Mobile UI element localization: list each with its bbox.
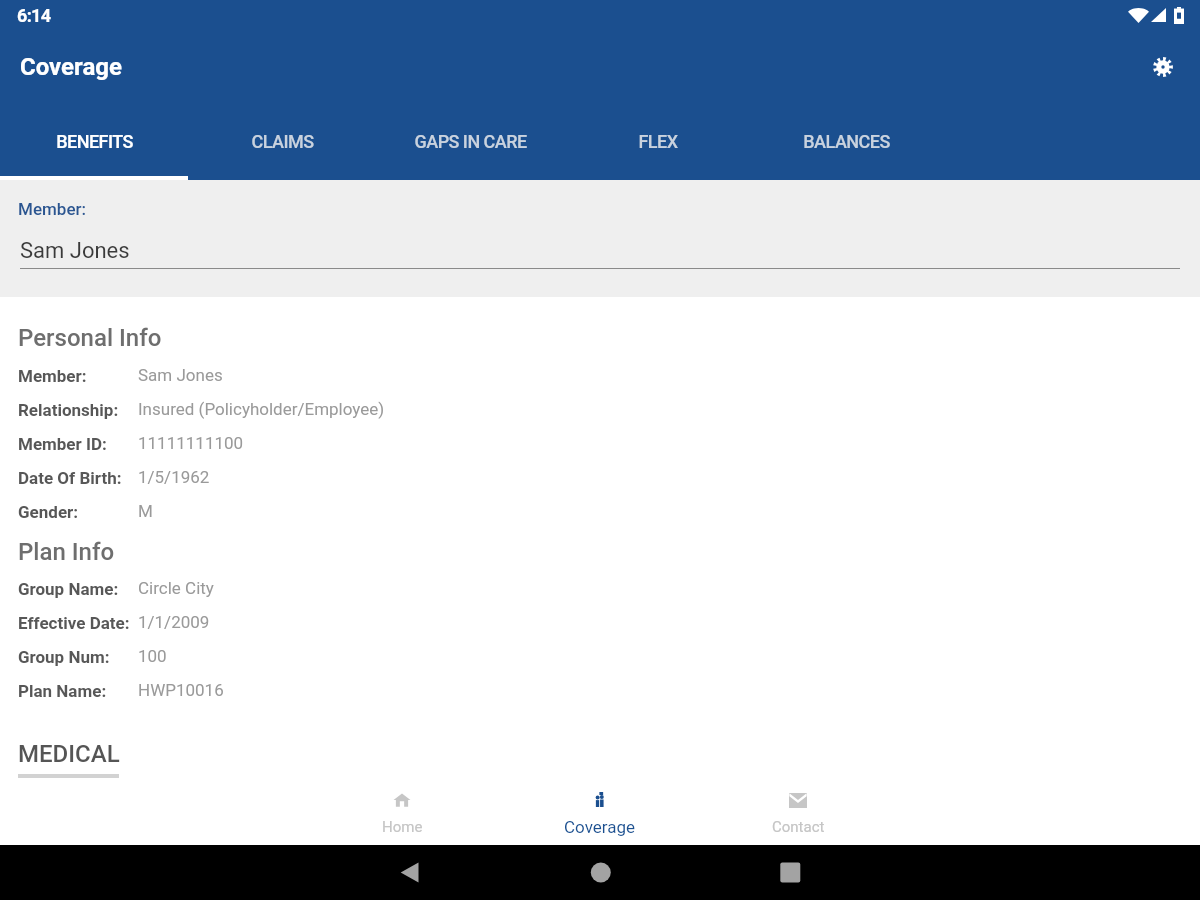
- staticText: Sam Jones: [20, 238, 130, 264]
- staticText: Member ID:: [18, 434, 107, 454]
- button[interactable]: BENEFITS: [0, 112, 188, 180]
- staticText: Gender:: [18, 502, 79, 522]
- staticText: CLAIMS: [251, 131, 314, 152]
- staticText: Circle City: [138, 578, 214, 598]
- button[interactable]: Coverage: [501, 783, 699, 845]
- staticText: Sam Jones: [138, 365, 223, 385]
- staticText: Coverage: [564, 817, 636, 837]
- button[interactable]: Sam Jones: [20, 226, 1180, 269]
- button[interactable]: Home: [570, 845, 630, 900]
- button[interactable]: GAPS IN CARE: [376, 112, 564, 180]
- staticText: Contact: [772, 818, 825, 836]
- staticText: MEDICAL: [18, 740, 120, 768]
- staticText: Group Name:: [18, 579, 119, 599]
- staticText: Relationship:: [18, 400, 119, 420]
- staticText: Member:: [18, 366, 87, 386]
- staticText: 1/1/2009: [138, 612, 210, 632]
- button[interactable]: FLEX: [564, 112, 752, 180]
- button[interactable]: Back: [380, 845, 440, 900]
- staticText: GAPS IN CARE: [414, 131, 527, 152]
- staticText: M: [138, 501, 153, 521]
- staticText: Member:: [18, 199, 86, 219]
- button[interactable]: BALANCES: [752, 112, 940, 180]
- staticText: Plan Info: [18, 538, 115, 566]
- button[interactable]: Home: [303, 783, 501, 845]
- staticText: Personal Info: [18, 324, 162, 352]
- staticText: Date Of Birth:: [18, 468, 122, 488]
- staticText: Effective Date:: [18, 613, 130, 633]
- staticText: Home: [382, 818, 423, 836]
- staticText: 1/5/1962: [138, 467, 210, 487]
- staticText: HWP10016: [138, 680, 224, 700]
- button[interactable]: Recent apps: [750, 845, 810, 900]
- staticText: BENEFITS: [56, 131, 133, 152]
- staticText: Plan Name:: [18, 681, 107, 701]
- staticText: Group Num:: [18, 647, 110, 667]
- staticText: FLEX: [638, 131, 678, 152]
- staticText: Coverage: [20, 53, 123, 81]
- staticText: 100: [138, 646, 167, 666]
- button[interactable]: Contact: [699, 783, 897, 845]
- staticText: 6:14: [17, 5, 51, 26]
- staticText: Insured (Policyholder/Employee): [138, 399, 385, 419]
- button[interactable]: CLAIMS: [188, 112, 376, 180]
- button[interactable]: Settings: [1143, 47, 1183, 87]
- staticText: BALANCES: [803, 131, 890, 152]
- staticText: 11111111100: [138, 433, 244, 453]
